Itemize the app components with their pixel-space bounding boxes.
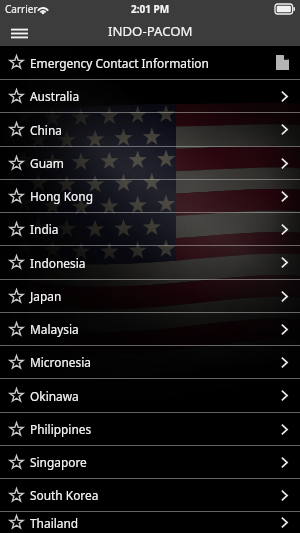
staticText: Carrier [5,2,38,16]
staticText: South Korea [30,487,99,503]
staticText: Thailand [30,515,79,531]
button[interactable]: Emergency Contact Information [0,46,300,79]
button[interactable]: Thailand [0,512,300,533]
staticText: Indonesia [30,255,86,271]
button[interactable]: Hong Kong [0,180,300,212]
staticText: Micronesia [30,354,91,370]
staticText: Hong Kong [30,188,93,204]
button[interactable]: Menu [0,20,38,46]
button[interactable]: Micronesia [0,346,300,378]
staticText: Singapore [30,454,87,470]
staticText: Okinawa [30,388,79,404]
staticText: Australia [30,88,80,104]
staticText: China [30,122,62,138]
button[interactable]: Guam [0,147,300,179]
button[interactable]: China [0,113,300,146]
button[interactable]: Okinawa [0,379,300,412]
button[interactable]: India [0,213,300,245]
button[interactable]: Australia [0,80,300,112]
button[interactable]: Japan [0,280,300,312]
staticText: Philippines [30,421,92,437]
staticText: India [30,221,59,237]
staticText: Japan [30,288,62,304]
button[interactable]: Singapore [0,446,300,478]
button[interactable]: Malaysia [0,313,300,345]
staticText: Malaysia [30,321,79,337]
staticText: Guam [30,155,64,171]
button[interactable]: Philippines [0,413,300,445]
button[interactable]: Indonesia [0,246,300,279]
staticText: 2:01 PM [131,2,170,16]
staticText: Emergency Contact Information [30,55,209,71]
button[interactable]: South Korea [0,479,300,511]
staticText: INDO-PACOM [108,22,193,40]
